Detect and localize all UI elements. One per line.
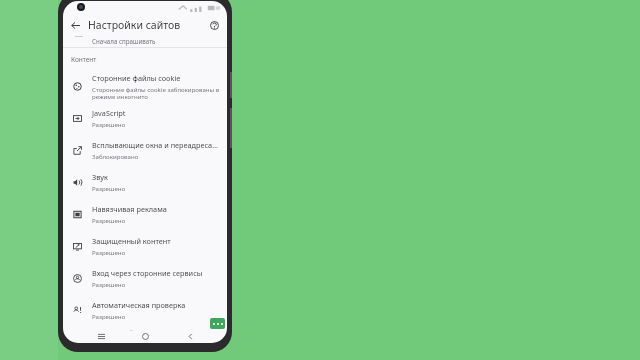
staticText: Разрешено: [92, 280, 126, 288]
button[interactable]: Сторонние файлы cookie: [63, 70, 227, 102]
staticText: Разрешено: [92, 184, 126, 192]
staticText: Заблокировано: [92, 152, 139, 160]
button[interactable]: Home: [138, 329, 152, 343]
staticText: Контент: [71, 55, 97, 64]
staticText: Вход через сторонние сервисы: [92, 268, 203, 278]
staticText: Защищенный контент: [92, 236, 171, 246]
staticText: Навязчивая реклама: [92, 204, 167, 214]
staticText: JavaScript: [92, 108, 126, 118]
button[interactable]: Back: [183, 329, 197, 343]
staticText: Автоматическая проверка: [92, 300, 186, 310]
button[interactable]: Звук: [63, 166, 227, 198]
button[interactable]: Recents: [94, 329, 108, 343]
staticText: Разрешено: [92, 120, 126, 128]
staticText: Настройки сайтов: [88, 18, 206, 32]
staticText: Сначала спрашивать: [92, 37, 156, 45]
button[interactable]: Всплывающие окна и переадресация: [63, 134, 227, 166]
button[interactable]: Вход через сторонние сервисы: [63, 262, 227, 294]
staticText: Разрешено: [92, 248, 126, 256]
staticText: Всплывающие окна и переадресация: [92, 140, 221, 150]
button[interactable]: Back: [67, 17, 83, 33]
staticText: Разрешено: [92, 312, 126, 320]
staticText: Сторонние файлы cookie: [92, 73, 181, 83]
button[interactable]: Защищенный контент: [63, 230, 227, 262]
staticText: Разрешено: [92, 216, 126, 224]
staticText: Сторонние файлы cookie заблокированы в р…: [92, 85, 220, 100]
staticText: Звук: [92, 172, 108, 182]
button[interactable]: Help: [206, 17, 222, 33]
button[interactable]: More options: [210, 318, 225, 329]
button[interactable]: JavaScript: [63, 102, 227, 134]
button[interactable]: Навязчивая реклама: [63, 198, 227, 230]
button[interactable]: Автоматическая проверка: [63, 294, 227, 326]
